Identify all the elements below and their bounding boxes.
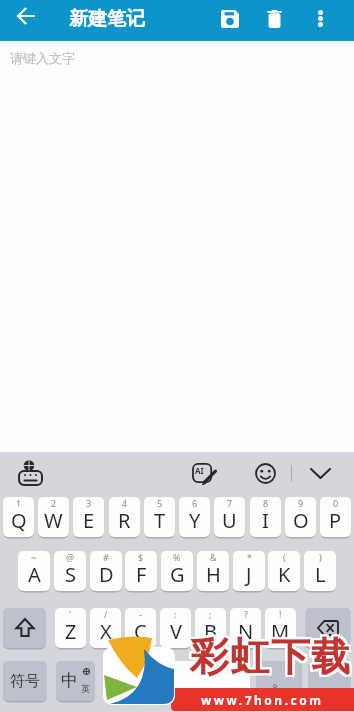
staticText: 彩虹下载 xyxy=(189,630,351,679)
button[interactable]: 7 xyxy=(214,497,245,537)
staticText: / xyxy=(104,608,108,620)
staticText: 0 xyxy=(333,497,339,509)
staticText: M xyxy=(271,618,290,645)
staticText: N xyxy=(238,618,254,645)
button[interactable]: & xyxy=(197,551,229,591)
staticText: 2 xyxy=(51,497,57,509)
staticText: 彩虹下载 xyxy=(191,632,353,681)
button[interactable]: % xyxy=(161,551,193,591)
staticText: R xyxy=(118,507,131,534)
staticText: A xyxy=(28,561,41,588)
button[interactable] xyxy=(297,0,343,41)
button[interactable]: 3 xyxy=(73,497,104,537)
button[interactable] xyxy=(304,453,336,493)
button[interactable] xyxy=(207,0,252,41)
button[interactable]: ? xyxy=(230,608,261,648)
button[interactable]: 。 xyxy=(256,661,302,701)
button[interactable]: 2 xyxy=(38,497,69,537)
staticText: 彩虹下载 xyxy=(191,630,353,679)
staticText: 请键入文字 xyxy=(10,50,75,66)
button[interactable]: 符号 xyxy=(3,661,47,701)
staticText: ' xyxy=(69,608,72,620)
button[interactable]: 1 xyxy=(3,497,34,537)
button[interactable]: 8 xyxy=(250,497,281,537)
staticText: ! xyxy=(279,608,282,620)
staticText: AI xyxy=(195,465,204,476)
button[interactable]: / xyxy=(90,608,121,648)
button[interactable] xyxy=(16,459,44,487)
button[interactable] xyxy=(305,608,351,648)
staticText: - xyxy=(139,608,142,620)
staticText: Z xyxy=(65,618,77,645)
staticText: 7 xyxy=(227,497,233,509)
staticText: S xyxy=(65,561,76,588)
staticText: 彩虹下载 xyxy=(187,632,349,681)
staticText: E xyxy=(83,507,95,534)
button[interactable]: ( xyxy=(268,551,300,591)
staticText: H xyxy=(206,561,221,588)
staticText: 彩虹下载 xyxy=(187,630,349,679)
staticText: 彩虹下载 xyxy=(187,634,349,683)
staticText: J xyxy=(246,561,252,588)
staticText: $ xyxy=(138,551,144,563)
button[interactable]: 6 xyxy=(179,497,210,537)
staticText: 5 xyxy=(157,497,163,509)
button[interactable]: 5 xyxy=(144,497,175,537)
staticText: # xyxy=(103,551,109,563)
staticText: 。 xyxy=(272,672,287,691)
button[interactable] xyxy=(3,608,46,648)
button[interactable]: AI xyxy=(186,453,222,493)
button[interactable]: 9 xyxy=(285,497,316,537)
staticText: D xyxy=(99,561,114,588)
staticText: & xyxy=(210,551,217,563)
button[interactable]: 0 xyxy=(320,497,351,537)
staticText: ( xyxy=(283,551,286,563)
staticText: ? xyxy=(244,608,248,620)
staticText: 彩虹下载 xyxy=(191,634,353,683)
staticText: G xyxy=(170,561,185,588)
staticText: Q xyxy=(11,507,27,534)
staticText: % xyxy=(173,551,181,563)
staticText: 1 xyxy=(16,497,22,509)
button[interactable]: ! xyxy=(265,608,296,648)
staticText: @ xyxy=(66,551,75,563)
staticText: F xyxy=(136,561,147,588)
button[interactable] xyxy=(252,0,297,41)
staticText: 4 xyxy=(122,497,128,509)
button[interactable] xyxy=(104,661,250,701)
button[interactable]: # xyxy=(90,551,122,591)
staticText: W xyxy=(44,507,63,534)
staticText: K xyxy=(278,561,291,588)
button[interactable]: : xyxy=(160,608,191,648)
button[interactable] xyxy=(254,462,276,484)
staticText: 9 xyxy=(298,497,304,509)
button[interactable]: * xyxy=(233,551,265,591)
button[interactable] xyxy=(308,661,351,701)
staticText: 中 xyxy=(61,670,78,691)
staticText: B xyxy=(204,618,217,645)
staticText: ~ xyxy=(31,551,37,563)
button[interactable]: 中 xyxy=(56,661,95,701)
button[interactable]: ~ xyxy=(18,551,50,591)
staticText: Y xyxy=(189,507,201,534)
button[interactable] xyxy=(0,0,44,41)
staticText: * xyxy=(247,551,252,563)
button[interactable]: ) xyxy=(304,551,336,591)
button[interactable]: 4 xyxy=(109,497,140,537)
staticText: 彩虹下载 xyxy=(189,634,351,683)
staticText: I xyxy=(262,507,269,534)
staticText: ) xyxy=(319,551,322,563)
button[interactable]: @ xyxy=(54,551,86,591)
button[interactable]: $ xyxy=(125,551,157,591)
staticText: 英 xyxy=(81,683,90,694)
staticText: U xyxy=(222,507,237,534)
staticText: L xyxy=(315,561,326,588)
staticText: 新建笔记 xyxy=(69,7,145,31)
staticText: 3 xyxy=(86,497,92,509)
button[interactable]: - xyxy=(125,608,156,648)
staticText: 8 xyxy=(263,497,269,509)
button[interactable]: ; xyxy=(195,608,226,648)
button[interactable]: ' xyxy=(55,608,86,648)
staticText: ; xyxy=(209,608,212,620)
staticText: www.7hon.com xyxy=(201,692,324,708)
